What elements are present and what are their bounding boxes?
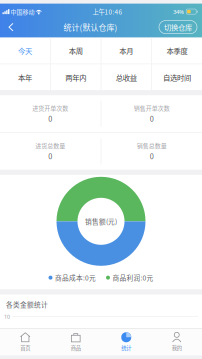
staticText: 本周 — [69, 45, 83, 56]
staticText: 进货总数量 — [35, 141, 65, 150]
staticText: 总收益 — [116, 72, 137, 82]
staticText: 0 — [150, 151, 154, 161]
staticText: 本季度 — [166, 45, 187, 56]
button[interactable]: 本月 — [101, 38, 151, 64]
button[interactable]: 商品 — [50, 328, 101, 355]
button[interactable]: 本季度 — [152, 38, 202, 64]
button[interactable]: 我的 — [151, 328, 202, 355]
staticText: 自选时间 — [163, 72, 191, 82]
staticText: 各类金额统计 — [6, 299, 48, 309]
staticText: 34% — [173, 7, 186, 16]
staticText: 销售额(元) — [85, 216, 117, 226]
staticText: 0 — [48, 113, 52, 124]
staticText: 两年内 — [65, 72, 86, 82]
staticText: 切换仓库 — [164, 22, 192, 32]
button[interactable]: 总收益 — [101, 64, 151, 90]
button[interactable]: 切换仓库 — [159, 21, 197, 34]
staticText: 0 — [48, 151, 52, 161]
button[interactable]: 自选时间 — [152, 64, 202, 90]
button[interactable]: 首页 — [0, 328, 50, 355]
staticText: 本月 — [119, 45, 133, 56]
staticText: 销售总数量 — [137, 141, 167, 150]
button[interactable]: 两年内 — [51, 64, 101, 90]
staticText: 商品 — [71, 344, 81, 351]
staticText: 我的 — [172, 344, 182, 351]
staticText: 中国移动 — [9, 7, 35, 16]
button[interactable]: 今天 — [0, 38, 50, 64]
staticText: 本年 — [18, 72, 32, 82]
staticText: 首页 — [20, 344, 30, 351]
button[interactable]: 本年 — [0, 64, 50, 90]
staticText: 统计 — [121, 344, 131, 351]
button[interactable]: 返回 — [0, 17, 22, 37]
staticText: 销售开单次数 — [134, 104, 170, 112]
staticText: 统计(默认仓库) — [63, 21, 117, 33]
button[interactable]: 本周 — [51, 38, 101, 64]
staticText: 商品利润:0元 — [112, 273, 153, 282]
staticText: 进货开单次数 — [32, 104, 68, 112]
staticText: 上午10:46 — [92, 7, 122, 16]
staticText: 今天 — [18, 45, 32, 56]
button[interactable]: 统计 — [101, 328, 151, 355]
staticText: 商品成本:0元 — [55, 273, 96, 282]
staticText: 10 — [4, 313, 10, 320]
staticText: 0 — [150, 113, 154, 124]
